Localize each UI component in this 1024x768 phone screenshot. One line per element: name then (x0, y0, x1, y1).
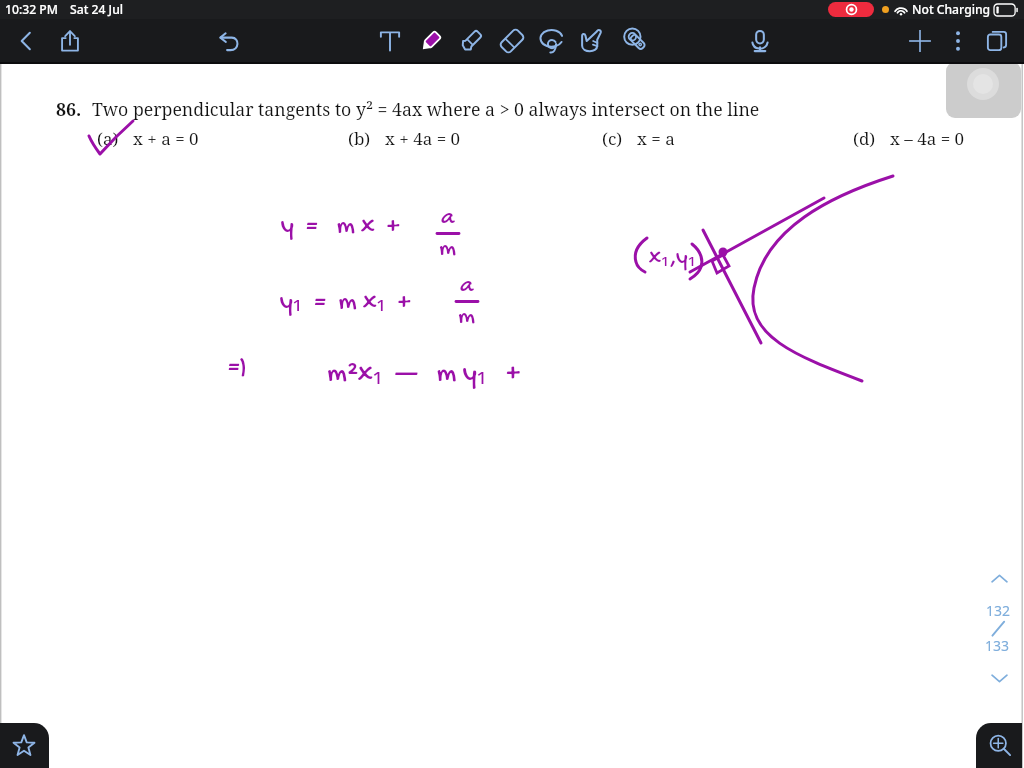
staticText: a (460, 272, 474, 300)
staticText: (a) (97, 127, 119, 150)
staticText: y₁ = m x₁ + (280, 280, 411, 318)
button[interactable]: Previous page (981, 566, 1017, 590)
staticText: (b) (348, 127, 371, 150)
staticText: 86. (56, 97, 82, 121)
button[interactable]: Page thumbnails (980, 19, 1014, 64)
button[interactable]: Add page (903, 19, 937, 64)
staticText: Not Charging (912, 1, 991, 18)
staticText: y = m x + (281, 212, 400, 243)
button[interactable]: More options (941, 19, 975, 64)
button[interactable]: Text tool (373, 19, 407, 64)
staticText: 132 (986, 601, 1011, 620)
staticText: Two perpendicular tangents to y² = 4ax w… (92, 97, 760, 121)
staticText: (c) (602, 127, 623, 150)
button[interactable]: Next page (981, 666, 1017, 690)
staticText: x = a (637, 127, 675, 150)
button[interactable]: Undo (212, 19, 246, 64)
staticText: m (458, 303, 476, 331)
staticText: m (439, 235, 457, 263)
button[interactable]: Microphone (743, 19, 777, 64)
staticText: x + 4a = 0 (385, 127, 461, 150)
staticText: 10:32 PM (5, 1, 58, 18)
staticText: a (441, 204, 455, 232)
button[interactable]: Highlighter (454, 19, 488, 64)
staticText: 133 (985, 636, 1010, 655)
staticText: x – 4a = 0 (890, 127, 965, 150)
staticText: Sat 24 Jul (70, 1, 124, 18)
staticText: (d) (853, 127, 876, 150)
button[interactable]: Hand pointer (574, 19, 608, 64)
staticText: x₁,y₁ (649, 238, 696, 272)
button[interactable]: Zoom in (976, 723, 1022, 768)
button[interactable]: Bookmark page (0, 723, 49, 768)
staticText: x + a = 0 (133, 127, 199, 150)
button[interactable]: Lasso select (535, 19, 569, 64)
button[interactable]: Back (9, 19, 43, 64)
staticText: m²x₁ — m y₁ + (327, 350, 521, 391)
staticText: =) (228, 353, 248, 384)
button[interactable]: Shape tool (612, 19, 646, 64)
button[interactable]: Share (53, 19, 87, 64)
button[interactable]: Eraser (495, 19, 529, 64)
button[interactable]: Pen tool (414, 19, 448, 64)
